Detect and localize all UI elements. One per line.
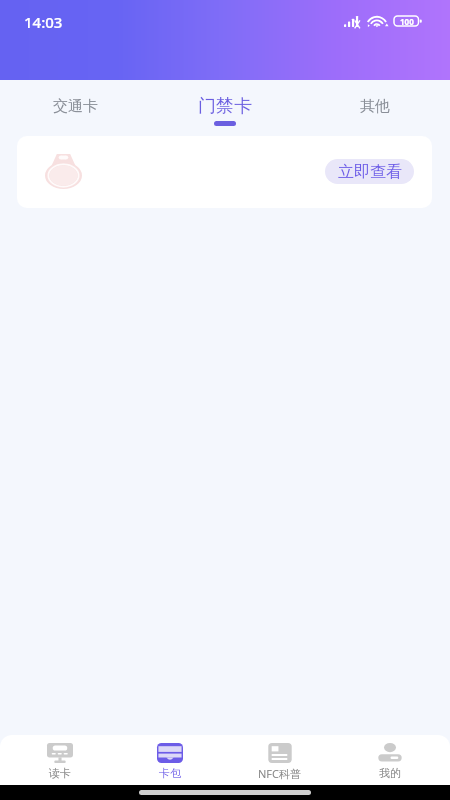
staticText: 交通卡 xyxy=(53,97,98,116)
staticText: 读卡 xyxy=(49,766,71,780)
button[interactable]: 读卡 xyxy=(5,735,115,785)
staticText: 100 xyxy=(400,16,414,26)
button[interactable]: 卡包 xyxy=(115,735,225,785)
button[interactable]: 立即查看 xyxy=(325,159,414,184)
button[interactable]: 门禁卡 xyxy=(150,80,300,136)
staticText: 14:03 xyxy=(24,12,63,32)
staticText: 其他 xyxy=(360,97,390,116)
staticText: 立即查看 xyxy=(338,162,402,182)
staticText: NFC科普 xyxy=(258,766,302,781)
button[interactable]: 其他 xyxy=(300,80,450,136)
button[interactable]: 我的 xyxy=(335,735,445,785)
button[interactable]: 立即查看 xyxy=(17,136,432,208)
staticText: 卡包 xyxy=(159,766,181,780)
button[interactable]: NFC科普 xyxy=(225,735,335,785)
staticText: 门禁卡 xyxy=(198,95,252,118)
staticText: 我的 xyxy=(379,766,401,780)
button[interactable]: 交通卡 xyxy=(0,80,150,136)
